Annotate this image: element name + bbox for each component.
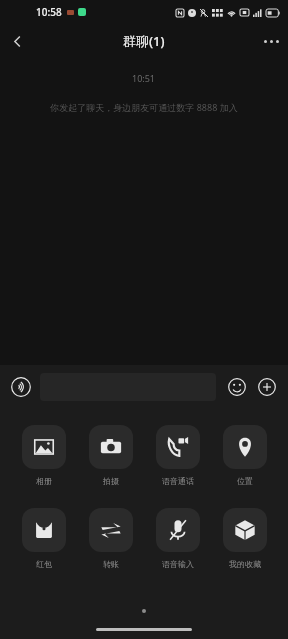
staticText: 语音通话 xyxy=(162,476,194,486)
staticText: 拍摄 xyxy=(103,476,119,486)
staticText: 我的收藏 xyxy=(229,559,261,569)
staticText: 10:58 xyxy=(36,5,62,19)
staticText: 转账 xyxy=(103,559,119,569)
button[interactable]: 相册 xyxy=(10,425,77,486)
button[interactable]: 语音输入 xyxy=(144,508,211,569)
button[interactable]: 语音通话 xyxy=(144,425,211,486)
button[interactable]: 红包 xyxy=(10,508,77,569)
button[interactable]: More functions xyxy=(254,374,280,400)
staticText: 语音输入 xyxy=(162,559,194,569)
button[interactable]: 拍摄 xyxy=(77,425,144,486)
button[interactable]: 位置 xyxy=(211,425,278,486)
staticText: 红包 xyxy=(36,559,52,569)
button[interactable]: Emoji xyxy=(224,374,250,400)
staticText: 10:51 xyxy=(132,72,156,84)
button[interactable]: 我的收藏 xyxy=(211,508,278,569)
staticText: 群聊(1) xyxy=(123,32,165,50)
staticText: 相册 xyxy=(36,476,52,486)
staticText: 位置 xyxy=(237,476,253,486)
button[interactable]: Voice message xyxy=(8,374,34,400)
staticText: 你发起了聊天，身边朋友可通过数字 8888 加入 xyxy=(50,101,238,113)
button[interactable]: Back xyxy=(0,24,34,58)
button[interactable]: 转账 xyxy=(77,508,144,569)
button[interactable]: More options xyxy=(254,24,288,58)
